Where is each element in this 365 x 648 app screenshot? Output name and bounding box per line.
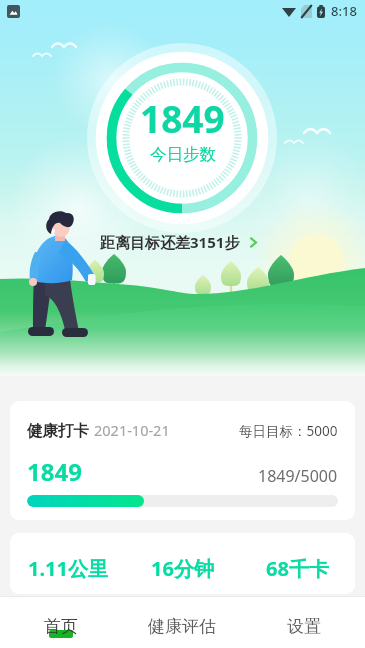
- staticText: 今日步数: [150, 144, 216, 165]
- staticText: 每日目标：5000: [239, 422, 338, 440]
- staticText: 2021-10-21: [94, 420, 170, 440]
- staticText: 首页: [44, 616, 78, 637]
- staticText: 距离目标还差3151步: [100, 232, 240, 252]
- staticText: 健康评估: [148, 616, 216, 637]
- staticText: 8:18: [331, 2, 357, 20]
- staticText: 1849: [140, 93, 225, 143]
- button[interactable]: 距离目标还差3151步: [98, 230, 261, 254]
- staticText: 健康打卡: [27, 421, 89, 441]
- button[interactable]: 健康打卡: [10, 401, 355, 520]
- button[interactable]: 健康评估: [121, 604, 243, 648]
- staticText: 16分钟: [151, 555, 214, 582]
- staticText: 1849: [27, 455, 82, 488]
- button[interactable]: 1.11公里: [10, 533, 355, 594]
- staticText: 设置: [287, 616, 321, 637]
- button[interactable]: 设置: [243, 604, 365, 648]
- staticText: 1849/5000: [258, 465, 338, 487]
- button[interactable]: 首页: [0, 604, 121, 648]
- staticText: 68千卡: [266, 555, 329, 582]
- staticText: 1.11公里: [28, 555, 108, 582]
